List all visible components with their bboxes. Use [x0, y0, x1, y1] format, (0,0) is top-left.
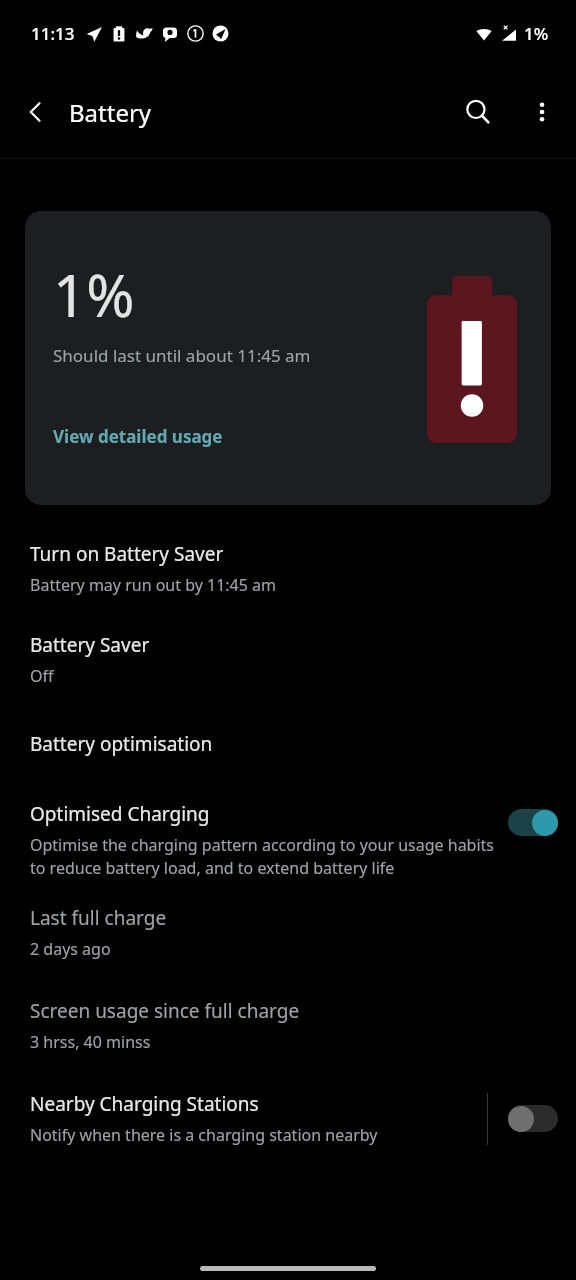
staticText: Battery may run out by 11:45 am	[30, 574, 277, 596]
staticText: 1%	[524, 22, 549, 45]
staticText: Turn on Battery Saver	[30, 541, 224, 567]
staticText: View detailed usage	[53, 425, 223, 448]
button[interactable]: Last full charge	[0, 905, 576, 960]
button[interactable]: Turn on Battery Saver	[0, 541, 576, 596]
button[interactable]: Optimised Charging	[0, 801, 576, 879]
staticText: Screen usage since full charge	[30, 998, 300, 1024]
staticText: Off	[30, 665, 54, 687]
staticText: Battery	[69, 96, 152, 129]
staticText: 11:13	[31, 22, 75, 45]
button[interactable]: View detailed usage	[53, 425, 223, 448]
button[interactable]: Toggle off	[508, 1105, 558, 1132]
staticText: Last full charge	[30, 905, 167, 931]
button[interactable]: Battery optimisation	[0, 731, 576, 757]
button[interactable]: Search	[454, 88, 502, 136]
staticText: Battery Saver	[30, 632, 150, 658]
staticText: Optimised Charging	[30, 801, 210, 827]
button[interactable]: Screen usage since full charge	[0, 998, 576, 1053]
button[interactable]: Nearby Charging Stations	[30, 1091, 487, 1146]
button[interactable]: Battery Saver	[0, 632, 576, 687]
button[interactable]: More options	[520, 90, 564, 134]
staticText: Notify when there is a charging station …	[30, 1124, 378, 1146]
staticText: Should last until about 11:45 am	[53, 344, 311, 367]
staticText: 3 hrss, 40 minss	[30, 1031, 151, 1053]
button[interactable]: Toggle on	[508, 809, 558, 836]
staticText: 2 days ago	[30, 938, 111, 960]
staticText: 1%	[53, 255, 135, 334]
button[interactable]: 1%	[25, 211, 551, 505]
staticText: Optimise the charging pattern according …	[30, 834, 502, 879]
staticText: Nearby Charging Stations	[30, 1091, 259, 1117]
button[interactable]: Back	[14, 90, 58, 134]
staticText: Battery optimisation	[30, 731, 213, 757]
